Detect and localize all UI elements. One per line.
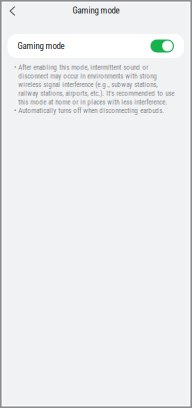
staticText: Automatically turns off when disconnecti… bbox=[18, 106, 164, 115]
staticText: • bbox=[14, 106, 16, 115]
button[interactable]: Back bbox=[0, 0, 22, 21]
staticText: • bbox=[14, 63, 16, 72]
staticText: Gaming mode bbox=[17, 41, 64, 51]
staticText: disconnect may occur in environments wit… bbox=[18, 72, 157, 80]
staticText: After enabling this mode, intermittent s… bbox=[18, 63, 148, 72]
button[interactable]: Gaming mode bbox=[7, 34, 184, 58]
staticText: wireless signal interference (e.g., subw… bbox=[18, 80, 157, 89]
staticText: railway stations, airports, etc.). It's … bbox=[18, 89, 174, 97]
staticText: Gaming mode bbox=[72, 5, 119, 16]
staticText: this mode at home or in places with less… bbox=[18, 98, 167, 106]
